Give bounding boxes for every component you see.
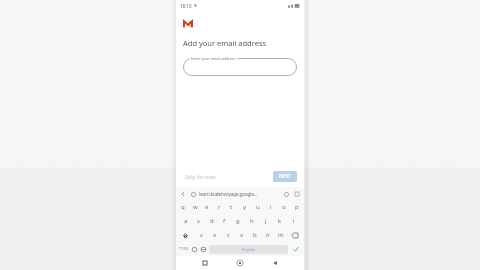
staticText: NEXT <box>279 173 292 180</box>
button[interactable]: q <box>177 200 189 214</box>
staticText: p <box>295 203 299 211</box>
staticText: k <box>278 217 282 225</box>
button[interactable]: j <box>259 214 273 228</box>
staticText: n <box>266 231 270 239</box>
staticText: h <box>250 217 254 225</box>
button[interactable]: Settings <box>282 190 290 198</box>
staticText: s <box>197 217 200 225</box>
button[interactable]: Enter <box>290 242 302 256</box>
button[interactable]: g <box>231 214 245 228</box>
staticText: z <box>200 231 203 239</box>
button[interactable]: a <box>179 214 192 228</box>
button[interactable]: k <box>273 214 287 228</box>
button[interactable]: z <box>194 228 208 242</box>
button[interactable]: Emoji <box>190 245 199 254</box>
button[interactable]: b <box>248 228 261 242</box>
button[interactable]: Shift <box>177 228 194 242</box>
staticText: x <box>213 231 217 239</box>
button[interactable]: Enter your email address <box>183 56 297 76</box>
button[interactable]: m <box>274 228 287 242</box>
staticText: d <box>210 217 214 225</box>
staticText: m <box>278 231 284 239</box>
button[interactable]: Skip for now <box>183 171 218 182</box>
staticText: v <box>240 231 244 239</box>
button[interactable]: Backspace <box>287 228 303 242</box>
button[interactable]: c <box>222 228 235 242</box>
button[interactable]: u <box>251 200 264 214</box>
button[interactable]: p <box>290 200 303 214</box>
button[interactable]: x <box>208 228 222 242</box>
staticText: j <box>265 217 267 225</box>
button[interactable]: Space <box>209 245 288 254</box>
staticText: c <box>227 231 230 239</box>
button[interactable]: d <box>205 214 218 228</box>
button[interactable]: Back <box>269 257 281 269</box>
button[interactable]: v <box>235 228 248 242</box>
button[interactable]: Expand toolbar <box>179 190 187 198</box>
staticText: Skip for now <box>185 173 216 180</box>
staticText: English <box>242 247 255 252</box>
button[interactable]: l <box>287 214 301 228</box>
staticText: a <box>184 217 188 225</box>
staticText: ?123 <box>179 246 189 252</box>
staticText: r <box>218 203 221 211</box>
button[interactable]: y <box>238 200 251 214</box>
staticText: f <box>223 217 226 225</box>
button[interactable]: w <box>189 200 201 214</box>
staticText: l <box>293 217 295 225</box>
staticText: o <box>282 203 286 211</box>
staticText: learn.kudenvoyage.google... <box>199 191 258 197</box>
button[interactable]: Change language <box>199 245 208 254</box>
button[interactable]: Clipboard <box>293 190 301 198</box>
staticText: w <box>193 203 198 211</box>
button[interactable]: i <box>264 200 277 214</box>
button[interactable]: r <box>213 200 225 214</box>
other: Gmail <box>183 20 193 28</box>
staticText: 18:13 <box>180 3 192 9</box>
button[interactable]: Home <box>234 257 246 269</box>
button[interactable]: s <box>192 214 205 228</box>
button[interactable]: Recents <box>199 257 211 269</box>
button[interactable]: e <box>201 200 213 214</box>
staticText: q <box>181 203 185 211</box>
button[interactable]: ?123 <box>178 242 190 256</box>
staticText: g <box>236 217 240 225</box>
button[interactable]: n <box>261 228 274 242</box>
staticText: b <box>253 231 257 239</box>
staticText: Add your email address <box>183 38 267 48</box>
staticText: i <box>270 203 272 211</box>
button[interactable]: o <box>277 200 290 214</box>
button[interactable]: t <box>225 200 238 214</box>
button[interactable]: NEXT <box>273 171 297 182</box>
button[interactable]: Search emoji <box>189 190 197 198</box>
button[interactable]: h <box>245 214 259 228</box>
staticText: y <box>243 203 247 211</box>
button[interactable]: f <box>218 214 231 228</box>
button[interactable]: learn.kudenvoyage.google... <box>199 191 282 197</box>
staticText: u <box>256 203 260 211</box>
staticText: t <box>230 203 233 211</box>
staticText: Enter your email address <box>191 56 236 61</box>
staticText: e <box>205 203 209 211</box>
